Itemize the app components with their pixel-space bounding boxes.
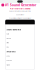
staticText: Sound Generator — [6, 28, 21, 31]
staticText: Play Multiple Sounds — [9, 7, 30, 10]
staticText: Wind — [6, 42, 9, 44]
button[interactable]: Fire — [5, 45, 35, 49]
staticText: Ambience — [6, 50, 15, 53]
staticText: Sound Mixer — [15, 14, 24, 16]
staticText: Forest — [6, 59, 12, 62]
button[interactable] — [5, 20, 35, 25]
button[interactable]: Ocean — [5, 36, 35, 40]
staticText: Relaxation White Noise Machine — [9, 10, 31, 12]
button[interactable]: Wind — [5, 40, 35, 45]
staticText: Free Online Ambient Sound Mixer — [8, 17, 31, 19]
button[interactable]: Forest — [5, 58, 35, 63]
staticText: Rain — [6, 33, 9, 35]
staticText: Cafe — [6, 55, 10, 57]
button[interactable]: Night — [5, 63, 35, 67]
button[interactable]: Rain — [5, 32, 35, 36]
staticText: Ocean — [6, 37, 11, 39]
staticText: Fire — [6, 46, 9, 48]
button[interactable]: Cafe — [5, 54, 35, 58]
staticText: Night — [6, 64, 10, 66]
staticText: #1 Sound Generator — [5, 3, 36, 7]
